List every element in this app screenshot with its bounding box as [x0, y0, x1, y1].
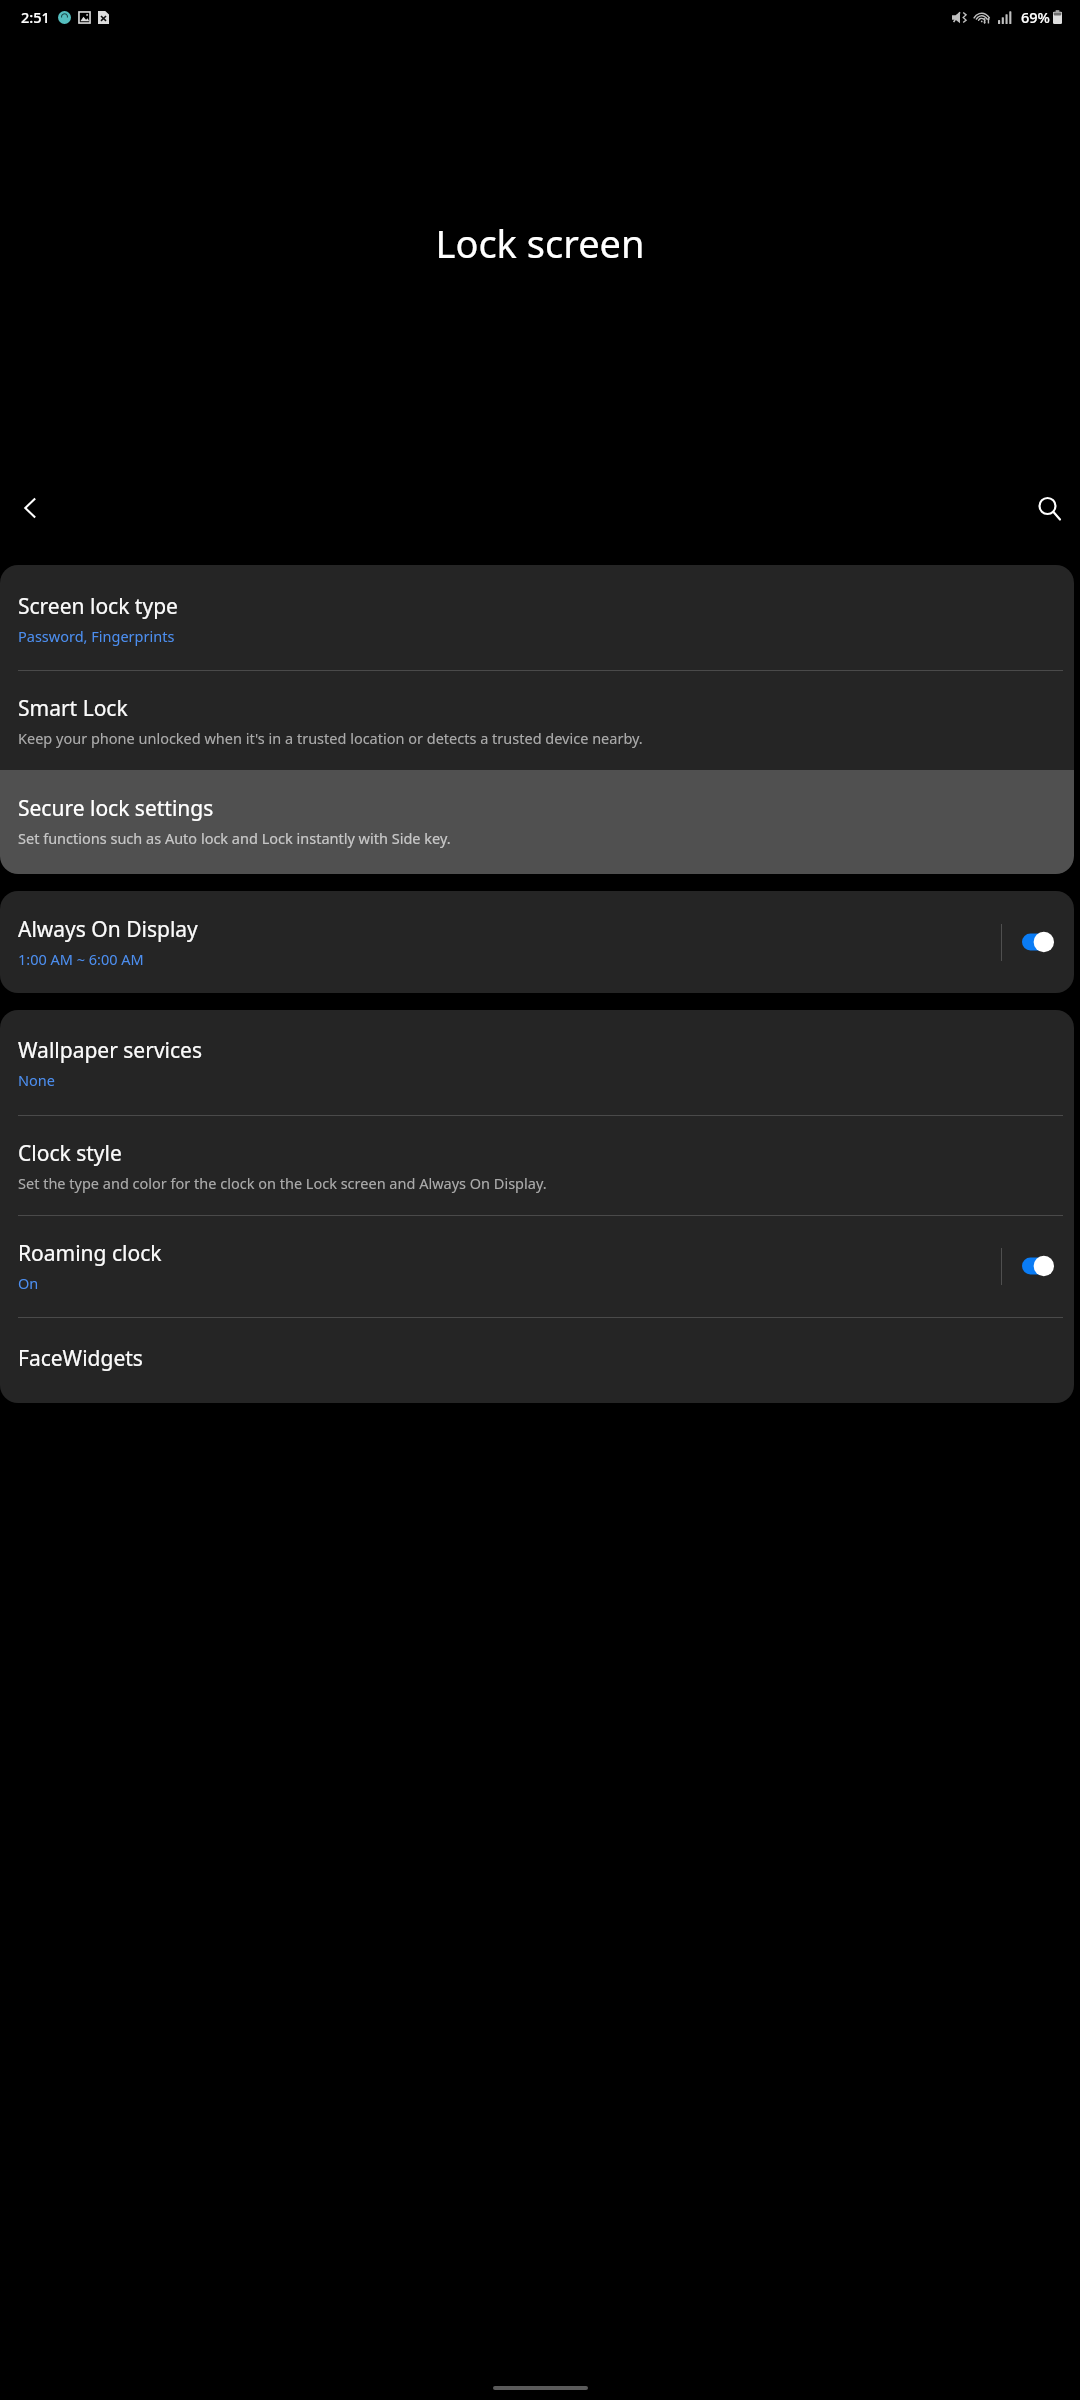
staticText: Roaming clock	[18, 1239, 162, 1268]
staticText: 2:51	[21, 7, 50, 27]
staticText: Set functions such as Auto lock and Lock…	[18, 828, 451, 848]
button[interactable]: Smart Lock	[0, 671, 1074, 770]
staticText: Screen lock type	[18, 592, 178, 621]
button[interactable]: Roaming clock	[0, 1216, 1074, 1317]
button[interactable]: Clock style	[0, 1116, 1074, 1215]
button[interactable]: Toggle	[1014, 1249, 1060, 1283]
staticText: Keep your phone unlocked when it's in a …	[18, 728, 643, 748]
button[interactable]: Search	[1026, 485, 1072, 531]
staticText: Always On Display	[18, 915, 198, 944]
staticText: Wallpaper services	[18, 1036, 202, 1065]
staticText: None	[18, 1070, 55, 1090]
button[interactable]: Toggle	[1014, 925, 1060, 959]
button[interactable]: Screen lock type	[0, 565, 1074, 670]
staticText: Set the type and color for the clock on …	[18, 1173, 547, 1193]
staticText: Smart Lock	[18, 694, 128, 723]
button[interactable]: Navigate up	[8, 485, 54, 531]
button[interactable]: FaceWidgets	[0, 1318, 1074, 1403]
button[interactable]: Wallpaper services	[0, 1010, 1074, 1115]
staticText: FaceWidgets	[18, 1344, 143, 1373]
staticText: Clock style	[18, 1139, 122, 1168]
staticText: 69%	[1021, 7, 1050, 27]
staticText: Password, Fingerprints	[18, 626, 175, 646]
button[interactable]: Secure lock settings	[0, 770, 1074, 874]
button[interactable]: Always On Display	[0, 891, 1074, 993]
staticText: Lock screen	[435, 217, 645, 269]
staticText: Secure lock settings	[18, 794, 214, 823]
staticText: 1:00 AM ~ 6:00 AM	[18, 949, 144, 969]
staticText: On	[18, 1273, 39, 1293]
